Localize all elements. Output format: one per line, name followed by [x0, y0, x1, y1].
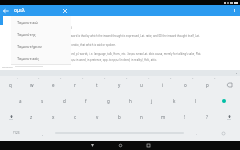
button[interactable]: f [75, 93, 97, 109]
staticText: 3 [60, 77, 62, 80]
staticText: ται, oratio, that which is said or spoke… [66, 43, 116, 47]
button[interactable]: Clear search [59, 5, 70, 16]
staticText: 9 [192, 77, 194, 80]
button[interactable]: ! [174, 109, 196, 125]
button[interactable]: Ταμιευτήριον [11, 40, 71, 52]
button[interactable]: Shift [218, 109, 240, 125]
staticText: 4 [82, 77, 84, 80]
button[interactable]: y [108, 76, 130, 93]
button[interactable]: Enter [207, 93, 240, 109]
button[interactable]: Ταμιευτικώ [11, 16, 71, 28]
staticText: j [151, 98, 153, 104]
button[interactable]: e [42, 76, 64, 93]
staticText: Ταμιευτήριον [17, 44, 42, 49]
staticText: i [162, 82, 164, 88]
staticText: l [195, 98, 197, 104]
button[interactable]: x [42, 109, 64, 125]
button[interactable]: l [185, 93, 207, 109]
button[interactable]: u [130, 76, 152, 93]
button[interactable]: s [31, 93, 53, 109]
button[interactable]: j [141, 93, 163, 109]
button[interactable]: v [86, 109, 108, 125]
button[interactable]: r [64, 76, 86, 93]
staticText: f [85, 98, 87, 104]
staticText: h [129, 98, 132, 104]
staticText: 8 [170, 77, 172, 80]
staticText: . [196, 131, 198, 136]
button[interactable]: k [163, 93, 185, 109]
staticText: w [30, 82, 34, 88]
staticText: a [19, 98, 22, 104]
staticText: ομιλ [14, 7, 25, 14]
button[interactable]: z [21, 109, 42, 125]
staticText: o [184, 82, 187, 88]
staticText: p [206, 82, 209, 88]
button[interactable]: c [64, 109, 86, 125]
button[interactable]: w [21, 76, 42, 93]
button[interactable]: Emoji [207, 125, 240, 141]
staticText: q [9, 82, 12, 88]
button[interactable]: Back [0, 5, 11, 16]
staticText: ? [206, 114, 208, 120]
button[interactable]: o [174, 76, 196, 93]
staticText: m [161, 114, 166, 120]
button[interactable]: g [97, 93, 119, 109]
staticText: Synonym [2, 65, 13, 68]
button[interactable]: q [0, 76, 21, 93]
staticText: Ταμιευτικώ [17, 20, 39, 25]
button[interactable]: Backspace [218, 76, 240, 93]
staticText: e [52, 82, 55, 88]
staticText: d [63, 98, 66, 104]
button[interactable]: Ταμιεύτης [11, 28, 71, 40]
button[interactable]: Space [53, 125, 186, 141]
button[interactable]: Ταμιευτικός [11, 52, 71, 64]
button[interactable]: i [152, 76, 174, 93]
button[interactable]: More options [229, 5, 240, 16]
button[interactable]: h [119, 93, 141, 109]
staticText: y [118, 82, 121, 88]
button[interactable]: Back [84, 141, 100, 150]
staticText: 2 [38, 77, 40, 80]
button[interactable]: ?123 [0, 125, 32, 141]
staticText: the word is that by which the inward tho… [66, 34, 200, 38]
button[interactable]: Recents [140, 141, 156, 150]
staticText: s [41, 98, 44, 104]
staticText: 6 [126, 77, 128, 80]
staticText: ωδ [68, 26, 72, 30]
button[interactable]: a [10, 93, 31, 109]
staticText: 0 [214, 77, 216, 80]
staticText: , [42, 131, 44, 136]
staticText: c [74, 114, 77, 120]
staticText: n [140, 114, 143, 120]
button[interactable]: p [196, 76, 218, 93]
button[interactable]: Shift [0, 109, 21, 125]
staticText: ?123 [13, 131, 20, 135]
staticText: g [107, 98, 110, 104]
button[interactable]: m [152, 109, 174, 125]
staticText: u [140, 82, 143, 88]
staticText: 5 [104, 77, 106, 80]
staticText: 7 [148, 77, 150, 80]
button[interactable]: Home [112, 141, 128, 150]
button[interactable]: d [53, 93, 75, 109]
button[interactable]: ? [196, 109, 218, 125]
staticText: k [173, 98, 176, 104]
button[interactable]: t [86, 76, 108, 93]
staticText: a word, pl. words, i. e. language, talk,… [66, 52, 202, 56]
staticText: v [96, 114, 99, 120]
staticText: z [30, 114, 33, 120]
button[interactable]: n [130, 109, 152, 125]
staticText: ! [184, 114, 186, 120]
staticText: x [52, 114, 55, 120]
staticText: Ταμιεύτης [17, 32, 36, 37]
staticText: t [96, 82, 98, 88]
staticText: λογω in word, in pretence, opp. to εργω … [69, 58, 157, 62]
staticText: 1 [17, 77, 19, 80]
button[interactable]: b [108, 109, 130, 125]
staticText: b [118, 114, 121, 120]
staticText: Ταμιευτικός [17, 56, 40, 61]
staticText: r [74, 82, 76, 88]
